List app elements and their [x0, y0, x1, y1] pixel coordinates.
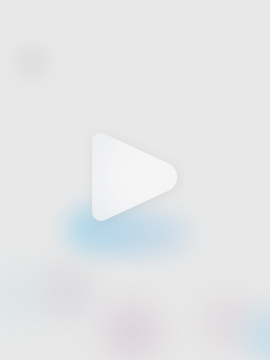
button[interactable]: Play: [82, 131, 188, 229]
